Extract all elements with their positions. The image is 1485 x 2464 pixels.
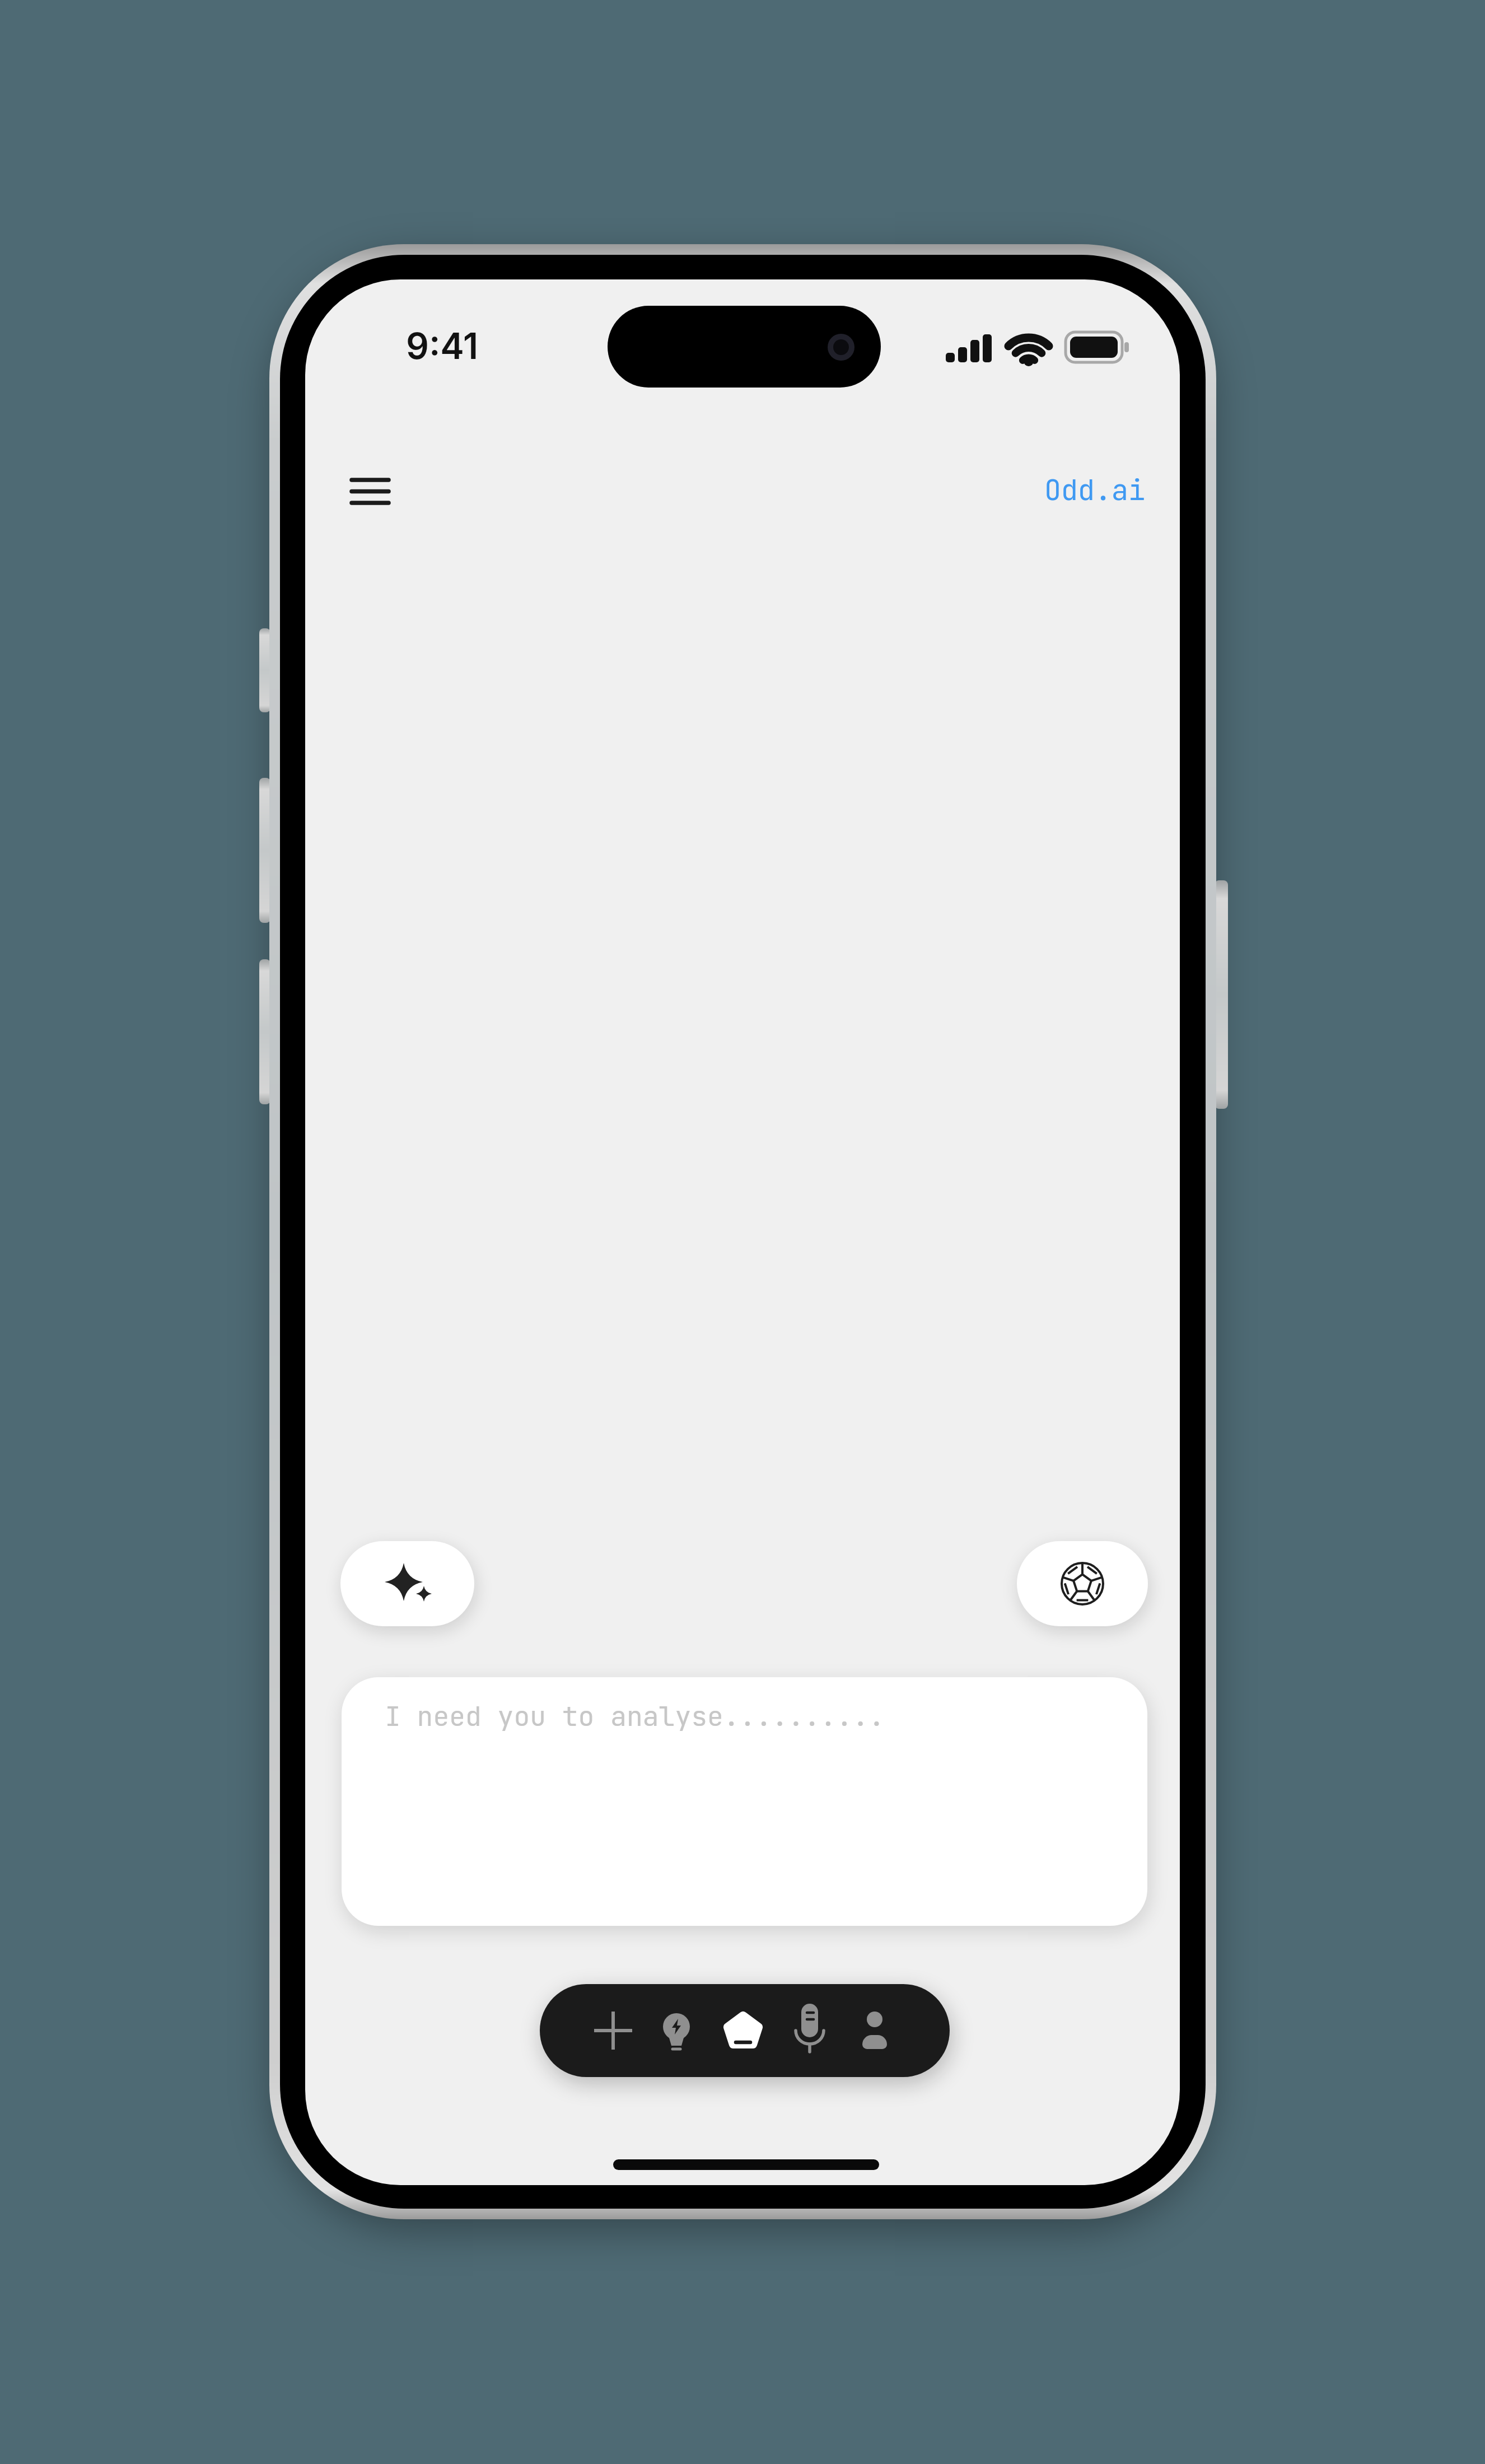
button[interactable] <box>712 1984 774 2077</box>
button[interactable] <box>646 1984 707 2077</box>
button[interactable] <box>1017 1541 1148 1626</box>
staticText: I need you to analyse.......... <box>385 1698 885 1734</box>
button[interactable] <box>844 1984 905 2077</box>
button[interactable] <box>582 1984 644 2077</box>
staticText: Odd.ai <box>1044 472 1145 508</box>
staticText: 9:41 <box>406 324 478 367</box>
button[interactable] <box>340 1541 474 1626</box>
button[interactable] <box>337 466 404 520</box>
button[interactable] <box>779 1984 840 2077</box>
button[interactable]: Odd.ai <box>1022 468 1145 512</box>
button[interactable]: I need you to analyse.......... <box>342 1677 1147 1926</box>
